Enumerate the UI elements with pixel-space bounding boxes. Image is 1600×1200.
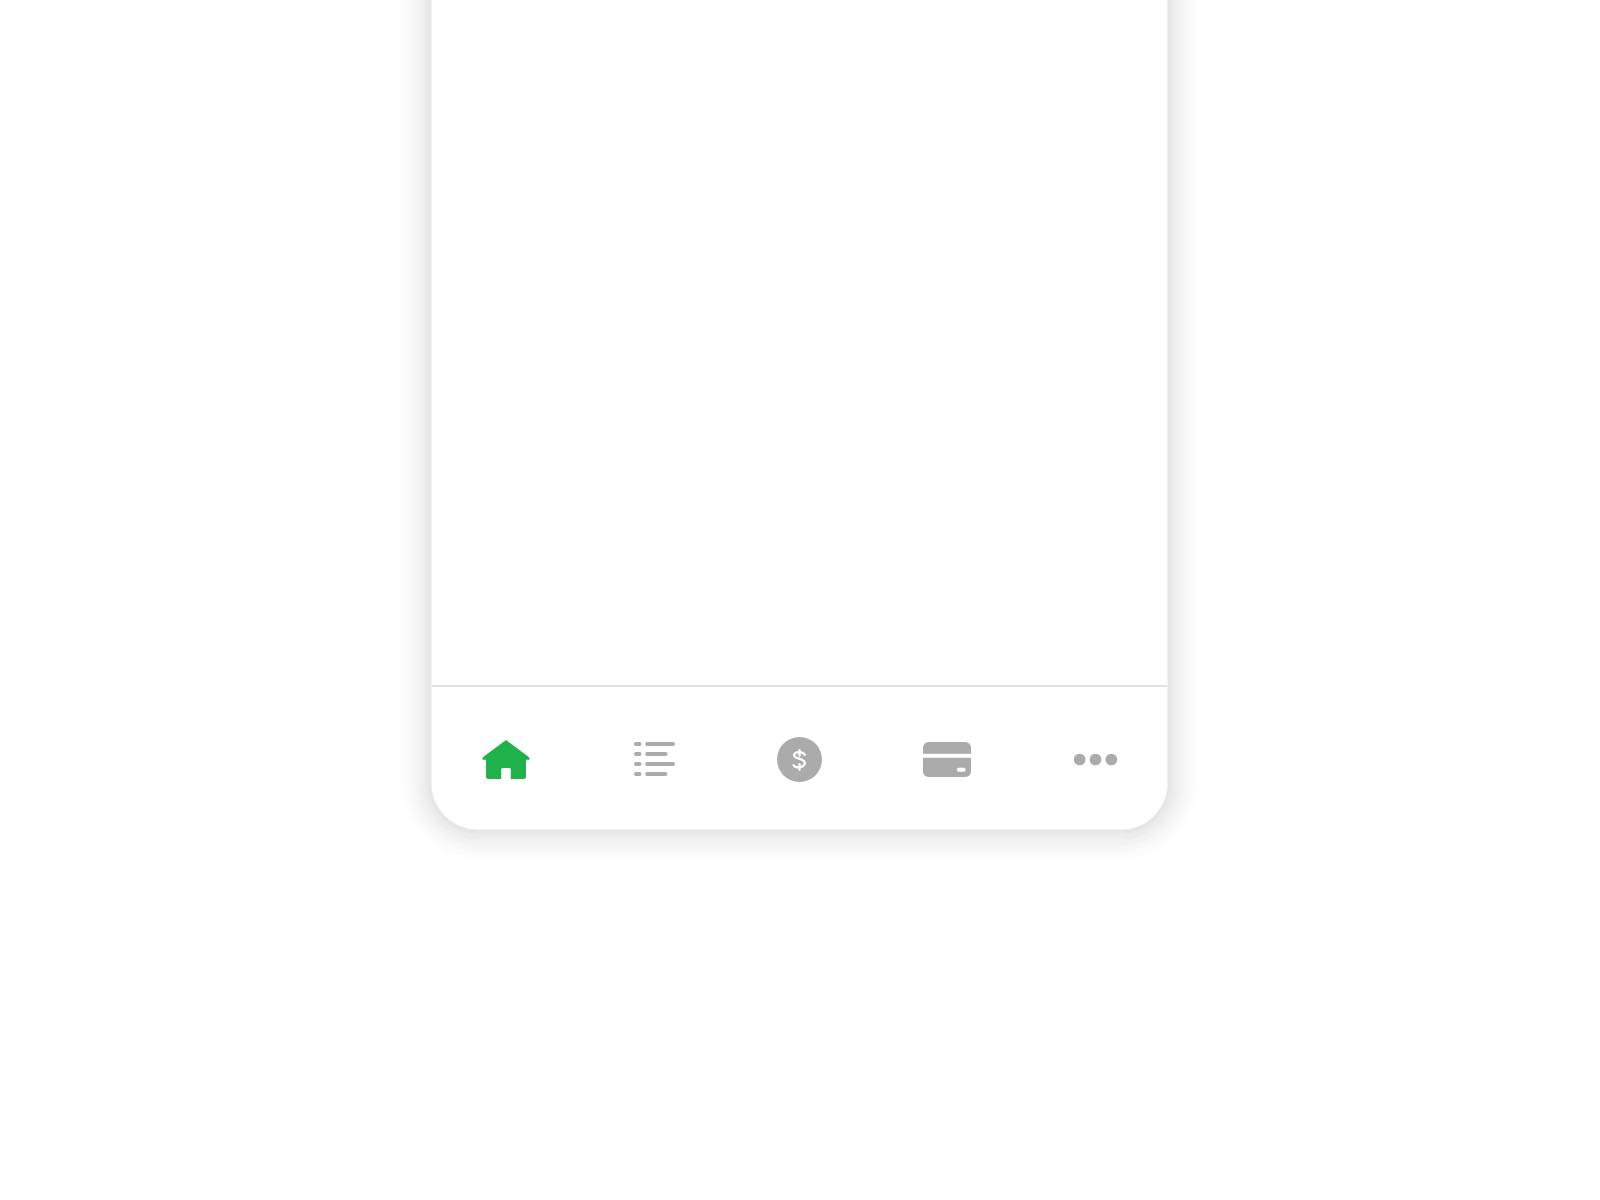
button[interactable]: Cards [873,722,1020,796]
button[interactable]: More [1020,722,1167,796]
button[interactable]: Activity [579,722,726,796]
button[interactable]: Home [432,722,579,796]
button[interactable]: Payments [726,722,873,796]
